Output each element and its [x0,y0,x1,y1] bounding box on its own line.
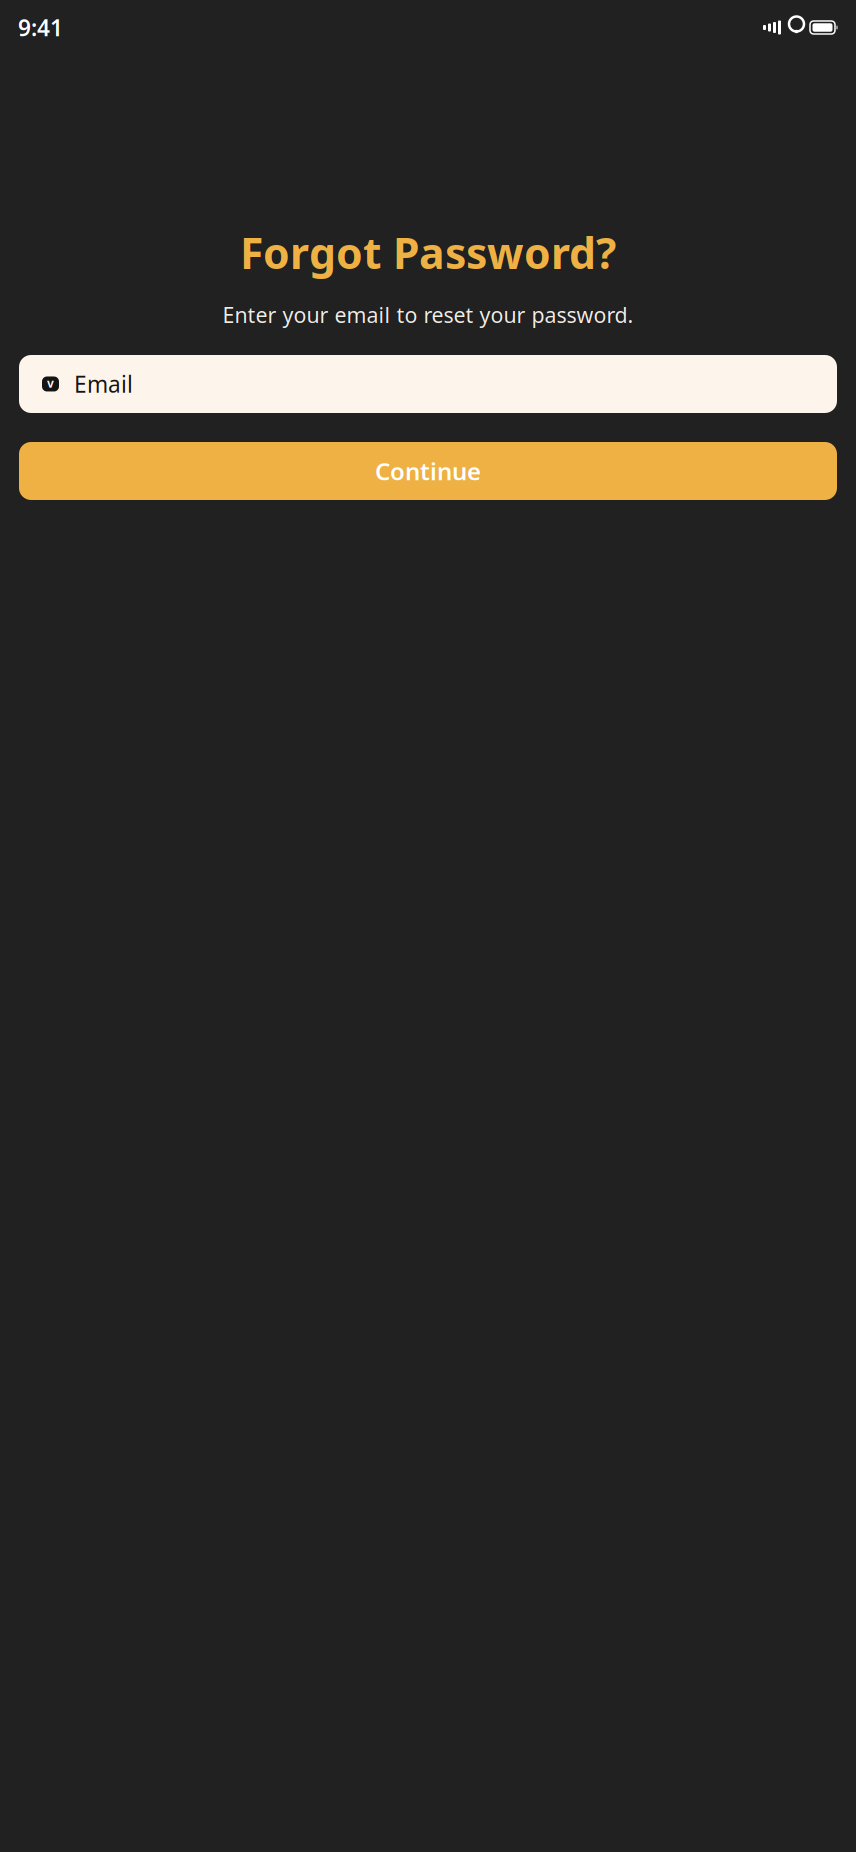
staticText: Forgot Password? [240,224,616,281]
staticText: 9:41 [18,12,63,42]
button[interactable]: v [19,355,837,413]
staticText: Continue [375,455,481,487]
button[interactable]: Continue [19,442,837,500]
staticText: Enter your email to reset your password. [222,301,633,329]
staticText: Email [74,369,133,399]
staticText: v [47,375,54,391]
